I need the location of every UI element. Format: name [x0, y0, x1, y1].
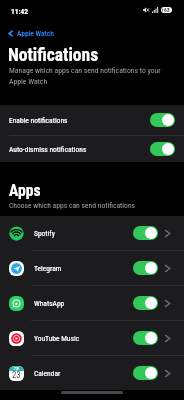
- staticText: Manage which apps can send notifications…: [9, 66, 169, 86]
- other: Open app settings: [165, 300, 170, 307]
- staticText: Auto-dismiss notifications: [9, 145, 87, 154]
- staticText: Enable notifications: [9, 116, 68, 125]
- other: Open app settings: [165, 265, 170, 272]
- button[interactable]: Spotify: [0, 216, 184, 250]
- staticText: 23: [12, 370, 21, 380]
- staticText: Notifications: [8, 45, 99, 66]
- staticText: Calendar: [34, 369, 61, 378]
- button[interactable]: YouTube Music: [0, 321, 184, 355]
- staticText: Apple Watch: [17, 29, 54, 38]
- staticText: Telegram: [34, 264, 62, 273]
- other: Open app settings: [165, 230, 170, 237]
- button[interactable]: Apple Watch: [7, 26, 54, 40]
- staticText: Apps: [9, 182, 41, 200]
- button[interactable]: TUE: [0, 356, 184, 390]
- other: Open app settings: [165, 370, 170, 377]
- staticText: WhatsApp: [34, 299, 65, 308]
- staticText: Choose which apps can send notifications: [9, 201, 136, 210]
- other: Open app settings: [165, 335, 170, 342]
- button[interactable]: Telegram: [0, 251, 184, 285]
- button[interactable]: WhatsApp: [0, 286, 184, 320]
- staticText: YouTube Music: [34, 334, 80, 343]
- staticText: 63: [164, 7, 170, 13]
- staticText: TUE: [14, 367, 20, 371]
- staticText: 11:42: [11, 7, 28, 16]
- button[interactable]: Auto-dismiss notifications: [0, 136, 184, 162]
- staticText: Spotify: [34, 229, 55, 238]
- button[interactable]: Enable notifications: [0, 105, 184, 135]
